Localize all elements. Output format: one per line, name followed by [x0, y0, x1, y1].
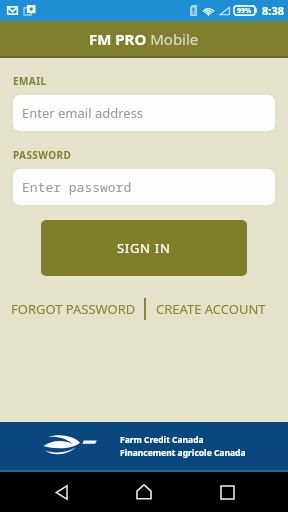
button[interactable]: Home [123, 472, 165, 512]
button[interactable]: SIGN IN [41, 220, 247, 276]
button[interactable]: FORGOT PASSWORD [7, 295, 140, 323]
staticText: Enter email address [22, 104, 144, 122]
staticText: FORGOT PASSWORD [11, 300, 136, 318]
button[interactable]: CREATE ACCOUNT [152, 295, 270, 323]
staticText: EMAIL [13, 74, 47, 88]
staticText: 8:38 [262, 3, 284, 18]
button[interactable]: Enter email address [13, 95, 275, 131]
staticText: CREATE ACCOUNT [156, 300, 266, 318]
staticText: Financement agricole Canada [120, 447, 246, 459]
staticText: FM PRO Mobile [89, 29, 199, 49]
button[interactable]: Recent apps [206, 472, 248, 512]
button[interactable]: Back [41, 472, 83, 512]
staticText: Farm Credit Canada [120, 434, 204, 446]
staticText: PASSWORD [13, 148, 72, 162]
button[interactable]: Enter password [13, 169, 275, 205]
staticText: 99% [237, 6, 252, 16]
staticText: Enter password [22, 178, 132, 196]
staticText: SIGN IN [117, 239, 171, 257]
